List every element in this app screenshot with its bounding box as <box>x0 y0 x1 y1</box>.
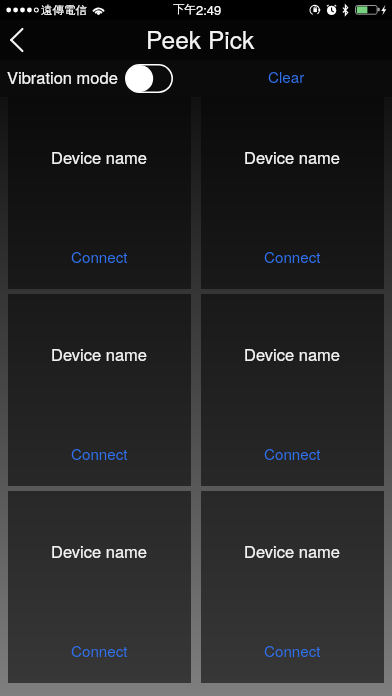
button[interactable]: Device name <box>201 294 384 486</box>
staticText: Device name <box>51 539 148 563</box>
staticText: Connect <box>264 246 321 268</box>
button[interactable]: Device name <box>8 491 191 683</box>
staticText: Device name <box>244 539 341 563</box>
button[interactable]: Device name <box>8 294 191 486</box>
button[interactable]: Connect <box>55 637 144 665</box>
staticText: Connect <box>71 640 128 662</box>
staticText: Device name <box>244 145 341 169</box>
button[interactable]: Back <box>0 20 40 60</box>
staticText: Vibration mode <box>7 65 118 89</box>
staticText: Clear <box>268 66 305 88</box>
button[interactable]: Device name <box>201 491 384 683</box>
button[interactable]: Device name <box>201 97 384 289</box>
staticText: Device name <box>51 342 148 366</box>
button[interactable]: Clear <box>256 60 316 97</box>
staticText: 下午 <box>173 2 196 16</box>
staticText: 遠傳電信 <box>41 3 87 17</box>
button[interactable]: Device name <box>8 97 191 289</box>
button[interactable]: Connect <box>55 243 144 271</box>
staticText: Connect <box>71 443 128 465</box>
button[interactable]: Vibration mode <box>125 64 173 93</box>
button[interactable]: Connect <box>248 440 337 468</box>
button[interactable]: Connect <box>55 440 144 468</box>
staticText: Connect <box>264 443 321 465</box>
staticText: 2:49 <box>196 0 222 19</box>
staticText: Device name <box>244 342 341 366</box>
staticText: Connect <box>264 640 321 662</box>
button[interactable]: Connect <box>248 637 337 665</box>
staticText: Connect <box>71 246 128 268</box>
button[interactable]: Connect <box>248 243 337 271</box>
staticText: Device name <box>51 145 148 169</box>
staticText: Peek Pick <box>146 21 255 56</box>
